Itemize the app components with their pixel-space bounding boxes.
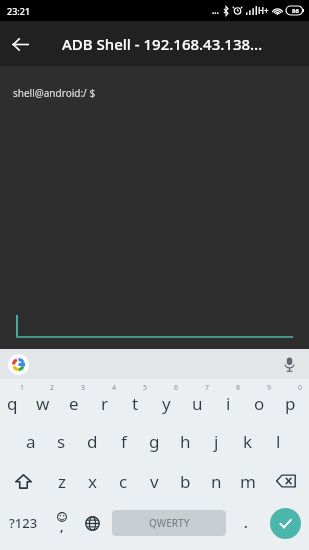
button[interactable]: b bbox=[170, 461, 201, 501]
staticText: H+ bbox=[258, 5, 269, 16]
staticText: f bbox=[121, 430, 127, 453]
staticText: r bbox=[101, 392, 109, 415]
staticText: v bbox=[150, 470, 159, 493]
staticText: q bbox=[7, 392, 18, 415]
button[interactable]: v bbox=[139, 461, 170, 501]
button[interactable]: QWERTY bbox=[112, 510, 226, 536]
staticText: 9 bbox=[267, 383, 272, 393]
staticText: 1 bbox=[20, 383, 25, 393]
button[interactable]: i bbox=[216, 379, 247, 421]
button[interactable]: f bbox=[108, 421, 139, 461]
staticText: shell@android:/ $ bbox=[13, 86, 96, 100]
staticText: e bbox=[69, 392, 79, 415]
staticText: y bbox=[162, 392, 171, 415]
staticText: p bbox=[285, 392, 296, 415]
staticText: h bbox=[180, 430, 191, 453]
button[interactable]: x bbox=[77, 461, 108, 501]
button[interactable]: t bbox=[123, 379, 154, 421]
staticText: w bbox=[36, 392, 50, 415]
staticText: g bbox=[149, 430, 160, 453]
button[interactable]: Back bbox=[0, 24, 40, 64]
staticText: 86 bbox=[292, 7, 299, 15]
staticText: 4 bbox=[112, 383, 117, 393]
button[interactable]: u bbox=[185, 379, 216, 421]
staticText: l bbox=[276, 430, 281, 453]
staticText: 2 bbox=[50, 383, 55, 393]
button[interactable]: y bbox=[154, 379, 185, 421]
staticText: a bbox=[26, 430, 36, 453]
staticText: t bbox=[132, 392, 139, 415]
button[interactable]: . bbox=[230, 501, 261, 545]
button[interactable]: Voice input bbox=[279, 354, 299, 374]
button[interactable]: l bbox=[263, 421, 294, 461]
staticText: i bbox=[226, 392, 231, 415]
button[interactable]: d bbox=[77, 421, 108, 461]
button[interactable]: e bbox=[61, 379, 92, 421]
staticText: 0 bbox=[298, 383, 303, 393]
button[interactable] bbox=[16, 309, 293, 349]
button[interactable]: c bbox=[108, 461, 139, 501]
staticText: ... bbox=[212, 5, 219, 16]
staticText: m bbox=[240, 470, 256, 493]
button[interactable]: s bbox=[46, 421, 77, 461]
staticText: c bbox=[119, 470, 128, 493]
staticText: s bbox=[57, 430, 66, 453]
button[interactable]: Shift bbox=[0, 461, 46, 501]
staticText: . bbox=[244, 514, 248, 532]
staticText: , bbox=[60, 518, 64, 534]
staticText: ADB Shell - 192.168.43.138… bbox=[62, 34, 263, 54]
staticText: z bbox=[58, 470, 66, 493]
staticText: 3 bbox=[81, 383, 86, 393]
staticText: x bbox=[88, 470, 97, 493]
button[interactable]: m bbox=[232, 461, 263, 501]
staticText: 8 bbox=[236, 383, 241, 393]
staticText: QWERTY bbox=[149, 516, 190, 530]
staticText: 23:21 bbox=[7, 5, 31, 17]
staticText: 5 bbox=[143, 383, 148, 393]
staticText: d bbox=[87, 430, 98, 453]
button[interactable]: a bbox=[15, 421, 46, 461]
button[interactable]: q bbox=[0, 379, 30, 421]
button[interactable]: h bbox=[170, 421, 201, 461]
button[interactable]: ?123 bbox=[0, 501, 46, 545]
button[interactable]: Emoji and comma bbox=[46, 501, 77, 545]
button[interactable]: n bbox=[201, 461, 232, 501]
staticText: u bbox=[192, 392, 203, 415]
button[interactable]: Change language bbox=[77, 501, 108, 545]
staticText: j bbox=[214, 430, 219, 453]
button[interactable]: Enter bbox=[261, 501, 309, 545]
button[interactable]: r bbox=[92, 379, 123, 421]
button[interactable]: j bbox=[201, 421, 232, 461]
staticText: n bbox=[211, 470, 222, 493]
button[interactable]: p bbox=[278, 379, 309, 421]
button[interactable]: z bbox=[46, 461, 77, 501]
staticText: o bbox=[254, 392, 265, 415]
button[interactable]: w bbox=[30, 379, 61, 421]
button[interactable]: g bbox=[139, 421, 170, 461]
staticText: 7 bbox=[205, 383, 210, 393]
staticText: 6 bbox=[174, 383, 179, 393]
staticText: ?123 bbox=[9, 514, 38, 532]
button[interactable]: o bbox=[247, 379, 278, 421]
button[interactable]: k bbox=[232, 421, 263, 461]
staticText: k bbox=[243, 430, 253, 453]
button[interactable]: Backspace bbox=[263, 461, 309, 501]
button[interactable]: Google search bbox=[7, 353, 29, 375]
staticText: b bbox=[180, 470, 191, 493]
